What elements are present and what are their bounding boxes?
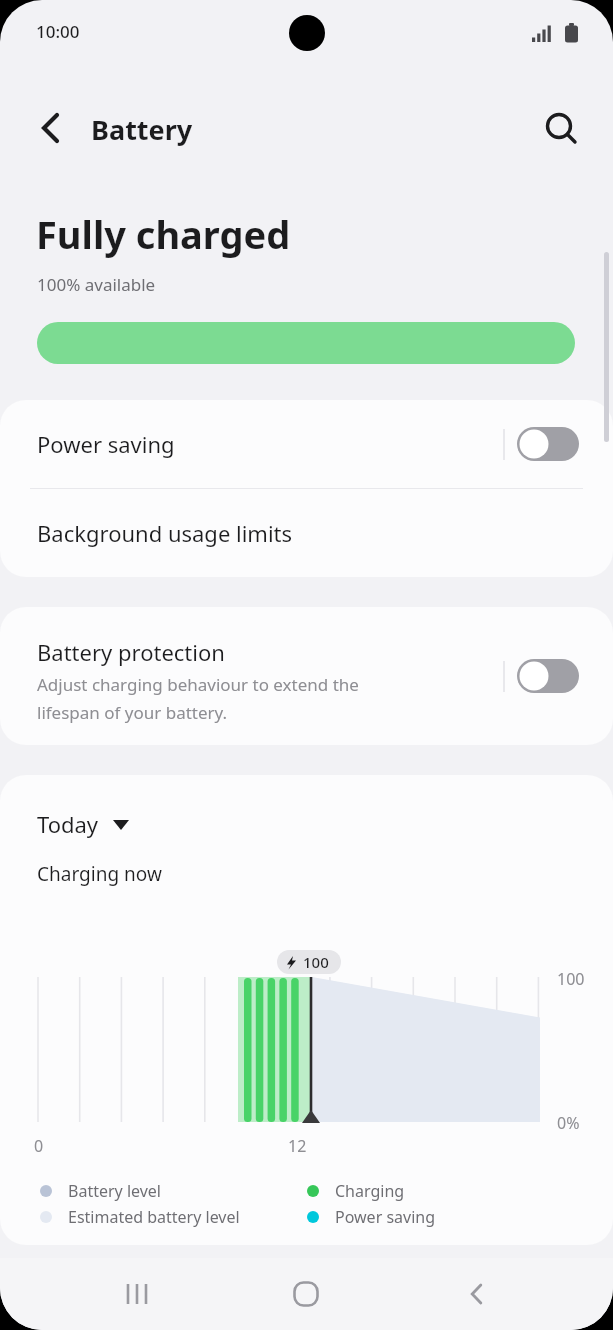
staticText: Today bbox=[37, 809, 99, 839]
staticText: Charging bbox=[335, 1180, 405, 1202]
button[interactable]: Search bbox=[537, 104, 585, 152]
staticText: Background usage limits bbox=[37, 518, 293, 548]
button[interactable]: Recents bbox=[98, 1264, 178, 1324]
staticText: 100% available bbox=[37, 273, 156, 296]
staticText: Battery protection bbox=[37, 637, 225, 667]
button[interactable]: Toggle bbox=[517, 427, 579, 461]
staticText: Battery bbox=[91, 111, 193, 148]
staticText: Charging now bbox=[37, 861, 162, 887]
staticText: 12 bbox=[288, 1135, 307, 1157]
button[interactable]: Home bbox=[266, 1264, 346, 1324]
staticText: Power saving bbox=[37, 429, 175, 459]
button[interactable]: Back bbox=[437, 1264, 517, 1324]
staticText: Power saving bbox=[335, 1206, 436, 1228]
staticText: 100 bbox=[557, 968, 585, 990]
staticText: Fully charged bbox=[36, 208, 291, 260]
button[interactable]: Toggle bbox=[517, 659, 579, 693]
staticText: Battery level bbox=[68, 1180, 161, 1202]
staticText: 0% bbox=[557, 1112, 580, 1134]
staticText: 100 bbox=[303, 952, 329, 972]
button[interactable]: Today bbox=[37, 809, 129, 839]
staticText: 10:00 bbox=[36, 20, 80, 43]
button[interactable]: Background usage limits bbox=[0, 489, 613, 577]
button[interactable]: Battery protection bbox=[0, 607, 613, 745]
staticText: 0 bbox=[34, 1135, 44, 1157]
button[interactable]: Power saving bbox=[0, 400, 613, 488]
staticText: Estimated battery level bbox=[68, 1206, 240, 1228]
button[interactable]: Back bbox=[26, 104, 74, 152]
staticText: Adjust charging behaviour to extend the … bbox=[37, 673, 359, 724]
